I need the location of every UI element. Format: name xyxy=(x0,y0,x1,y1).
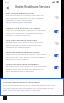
staticText: Manage appointments online xyxy=(6,50,40,53)
button[interactable]: Health care at work, no copay xyxy=(3,25,61,37)
staticText: Onsite Healthcare Services xyxy=(15,5,51,9)
staticText: Turn on notifications to get a reminder … xyxy=(3,84,56,91)
staticText: Review what your plan covers and what yo… xyxy=(6,41,43,48)
button[interactable]: Toggle xyxy=(54,16,59,19)
staticText: Share records with providers xyxy=(6,62,39,65)
staticText: Health care at work, no copay xyxy=(6,26,40,29)
button[interactable]: See your benefits summary xyxy=(3,37,61,49)
button[interactable]: Back xyxy=(5,5,10,10)
button[interactable]: Toggle xyxy=(54,66,59,69)
staticText: 9:41 xyxy=(5,1,9,4)
button[interactable]: Manage appointments online xyxy=(3,49,61,61)
staticText: Learn more about coverage xyxy=(6,21,32,24)
staticText: Visit any onsite health center for check… xyxy=(6,29,47,36)
staticText: Schedule, reschedule or cancel a visit f… xyxy=(6,53,46,60)
button[interactable]: Our health wellness tool xyxy=(3,10,61,25)
button[interactable]: Custom appointment reminders xyxy=(0,78,64,96)
staticText: Securely send your history to the care t… xyxy=(6,65,47,72)
button[interactable]: Share records with providers xyxy=(3,61,61,73)
staticText: Get care today at a nearby clinic with n… xyxy=(6,14,44,21)
staticText: See your benefits summary xyxy=(6,38,38,41)
button[interactable]: Toggle xyxy=(54,54,59,57)
button[interactable]: Toggle xyxy=(54,42,59,45)
button[interactable]: Toggle xyxy=(54,30,59,33)
staticText: Our health wellness tool xyxy=(6,11,34,14)
staticText: Custom appointment reminders xyxy=(3,80,40,83)
